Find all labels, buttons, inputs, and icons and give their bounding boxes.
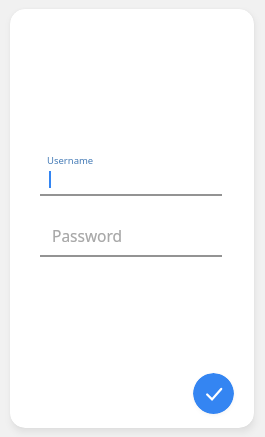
button[interactable]: Sign in — [193, 373, 234, 414]
staticText: Username — [47, 154, 94, 167]
staticText: Password — [52, 225, 123, 246]
button[interactable]: Username — [40, 144, 222, 194]
button[interactable]: Password — [40, 205, 222, 255]
